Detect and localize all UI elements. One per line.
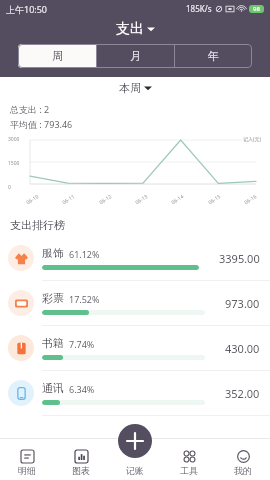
staticText: 06-16 <box>243 193 259 206</box>
staticText: 支出 <box>116 20 144 38</box>
button[interactable]: 明细 <box>0 438 54 480</box>
staticText: 185K/s <box>186 3 212 14</box>
button[interactable]: 本周 <box>111 79 160 97</box>
staticText: 周 <box>52 49 63 63</box>
staticText: 上午10:50 <box>6 3 48 15</box>
staticText: 0 <box>8 184 11 191</box>
button[interactable]: 通讯 <box>0 371 270 416</box>
button[interactable]: 彩票 <box>0 281 270 326</box>
staticText: 记账 <box>126 465 144 476</box>
button[interactable]: 记账 <box>118 424 152 458</box>
staticText: 本周 <box>119 81 141 95</box>
staticText: 我的 <box>234 465 252 476</box>
button[interactable]: 记账 <box>108 438 162 480</box>
staticText: 平均值 : 793.46 <box>10 118 73 130</box>
staticText: 430.00 <box>225 341 260 356</box>
button[interactable]: 支出 <box>108 18 163 40</box>
staticText: 352.00 <box>225 386 260 401</box>
staticText: 17.52% <box>69 293 100 305</box>
button[interactable]: 工具 <box>162 438 216 480</box>
staticText: 06-11 <box>61 193 77 206</box>
staticText: 记入(元) <box>243 136 262 143</box>
staticText: 98 <box>253 5 260 13</box>
button[interactable]: 年 <box>175 44 252 68</box>
staticText: 06-14 <box>170 193 186 206</box>
staticText: 工具 <box>180 465 198 476</box>
staticText: 支出排行榜 <box>10 218 65 232</box>
button[interactable]: 服饰 <box>0 236 270 281</box>
staticText: 书籍 <box>42 336 64 350</box>
button[interactable]: 图表 <box>54 438 108 480</box>
staticText: 月 <box>130 49 141 63</box>
staticText: 图表 <box>72 465 90 476</box>
staticText: 明细 <box>18 465 36 476</box>
button[interactable]: 书籍 <box>0 326 270 371</box>
staticText: 彩票 <box>42 291 64 305</box>
staticText: 61.12% <box>69 248 100 260</box>
staticText: 7.74% <box>69 338 95 350</box>
staticText: 06-12 <box>98 193 114 206</box>
staticText: 年 <box>208 49 219 63</box>
staticText: 06-15 <box>207 193 223 206</box>
staticText: 服饰 <box>42 246 64 260</box>
button[interactable]: 月 <box>97 44 174 68</box>
staticText: 06-10 <box>25 193 41 206</box>
staticText: 973.00 <box>225 296 260 311</box>
staticText: 1500 <box>8 160 20 167</box>
staticText: 06-13 <box>134 193 150 206</box>
staticText: 3395.00 <box>219 251 260 266</box>
button[interactable]: 我的 <box>216 438 270 480</box>
staticText: 通讯 <box>42 381 64 395</box>
staticText: 总支出 : 2 <box>10 103 50 115</box>
staticText: 3000 <box>8 136 20 143</box>
button[interactable]: 周 <box>18 44 96 68</box>
staticText: 6.34% <box>69 383 95 395</box>
